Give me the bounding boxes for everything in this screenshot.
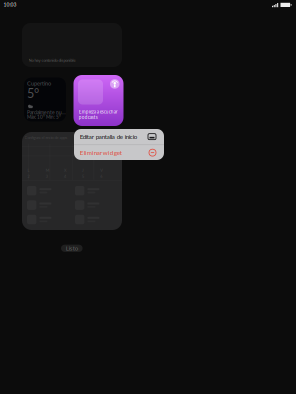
- staticText: 6: [100, 174, 102, 178]
- staticText: X: [64, 168, 67, 173]
- button[interactable]: Eliminar widget: [74, 145, 164, 160]
- staticText: Cupertino: [27, 80, 51, 87]
- staticText: Parcialmente nu…: [27, 109, 66, 115]
- button[interactable]: Editar pantalla de inicio: [74, 129, 164, 145]
- staticText: M: [46, 168, 50, 173]
- button[interactable]: Empieza a escuchar: [73, 75, 123, 126]
- button[interactable]: No hay contenido disponible: [22, 23, 122, 67]
- button[interactable]: Listo: [61, 245, 83, 252]
- staticText: 10:03: [3, 2, 16, 8]
- staticText: Máx: 10° Mín: 5°: [27, 114, 61, 120]
- button[interactable]: Configura el resto de apps: [22, 132, 122, 230]
- staticText: Empieza a escuchar: [79, 109, 118, 115]
- staticText: Listo: [66, 245, 78, 252]
- staticText: Configura el resto de apps: [24, 135, 67, 140]
- staticText: 2: [27, 174, 29, 178]
- staticText: V: [100, 168, 103, 173]
- staticText: No hay contenido disponible: [29, 58, 76, 63]
- staticText: podcasts: [79, 114, 98, 120]
- staticText: 5°: [27, 85, 39, 101]
- staticText: L: [27, 168, 29, 173]
- staticText: Eliminar widget: [80, 149, 122, 156]
- staticText: 4: [64, 174, 66, 178]
- staticText: 3: [46, 174, 48, 178]
- staticText: Editar pantalla de inicio: [80, 133, 137, 140]
- button[interactable]: Cupertino: [24, 77, 66, 121]
- staticText: J: [82, 168, 84, 173]
